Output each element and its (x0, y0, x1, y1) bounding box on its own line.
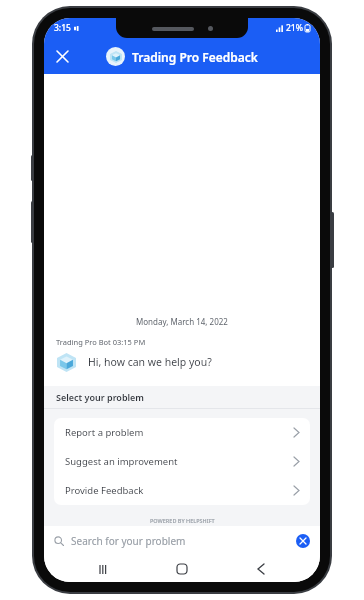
button[interactable]: Recent apps (83, 556, 123, 582)
button[interactable]: Home (162, 556, 202, 582)
button[interactable]: Suggest an improvement (54, 447, 310, 476)
staticText: Monday, March 14, 2022 (136, 316, 228, 327)
staticText: Provide Feedback (65, 484, 144, 497)
staticText: Select your problem (56, 391, 145, 403)
staticText: Trading Pro Bot 03:15 PM (56, 337, 146, 347)
button[interactable]: Back (241, 556, 281, 582)
staticText: Hi, how can we help you? (88, 355, 212, 369)
staticText: 21% (286, 22, 303, 34)
staticText: Report a problem (65, 426, 144, 439)
button[interactable]: Provide Feedback (54, 476, 310, 505)
staticText: Suggest an improvement (65, 455, 178, 468)
staticText: POWERED BY HELPSHIFT (150, 517, 215, 524)
staticText: Search for your problem (71, 534, 186, 548)
staticText: 3:15 (54, 22, 71, 34)
staticText: Trading Pro Feedback (132, 49, 258, 65)
button[interactable]: Clear search (296, 534, 310, 548)
button[interactable]: Close (48, 42, 76, 70)
button[interactable]: Report a problem (54, 418, 310, 447)
button[interactable]: Search for your problem (44, 526, 320, 556)
